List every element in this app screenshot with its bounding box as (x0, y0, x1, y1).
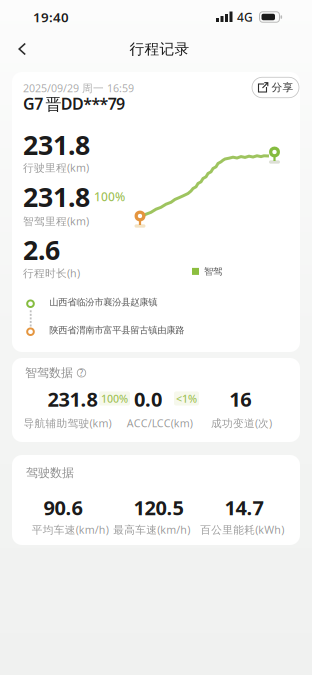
staticText: 平均车速(km/h) (32, 522, 109, 537)
staticText: 90.6 (43, 494, 82, 521)
staticText: <1% (176, 391, 197, 406)
staticText: 行驶里程(km) (23, 160, 89, 175)
staticText: ? (79, 368, 83, 378)
staticText: 231.8 (47, 386, 97, 412)
staticText: 19:40 (33, 8, 69, 26)
staticText: 百公里能耗(kWh) (200, 522, 284, 537)
staticText: 最高车速(km/h) (113, 522, 190, 537)
staticText: 231.8 (23, 127, 90, 162)
staticText: 智驾数据 (25, 365, 73, 380)
staticText: 231.8 (23, 179, 90, 214)
staticText: 行程记录 (129, 40, 189, 58)
staticText: 陕西省渭南市富平县留古镇由康路 (49, 324, 184, 336)
staticText: 16 (229, 386, 251, 412)
staticText: 驾驶数据 (26, 465, 74, 480)
staticText: 100% (101, 391, 128, 406)
staticText: 2.6 (23, 232, 60, 267)
staticText: 行程时长(h) (23, 266, 80, 280)
staticText: 120.5 (133, 494, 183, 521)
staticText: 智驾 (204, 266, 222, 277)
staticText: 成功变道(次) (211, 416, 272, 430)
staticText: 0.0 (134, 386, 162, 412)
button[interactable] (0, 34, 27, 63)
staticText: 2025/09/29 周一 16:59 (23, 81, 134, 95)
staticText: 智驾里程(km) (23, 214, 89, 228)
button[interactable]: ? (77, 368, 86, 377)
staticText: 山西省临汾市襄汾县赵康镇 (49, 296, 157, 308)
staticText: 4G (237, 9, 253, 25)
staticText: 14.7 (224, 494, 263, 521)
staticText: 导航辅助驾驶(km) (24, 416, 112, 430)
staticText: ACC/LCC(km) (127, 416, 193, 430)
staticText: 100% (94, 189, 125, 205)
staticText: 分享 (271, 81, 293, 94)
button[interactable]: 分享 (252, 77, 299, 98)
staticText: G7 晋DD***79 (23, 93, 125, 114)
